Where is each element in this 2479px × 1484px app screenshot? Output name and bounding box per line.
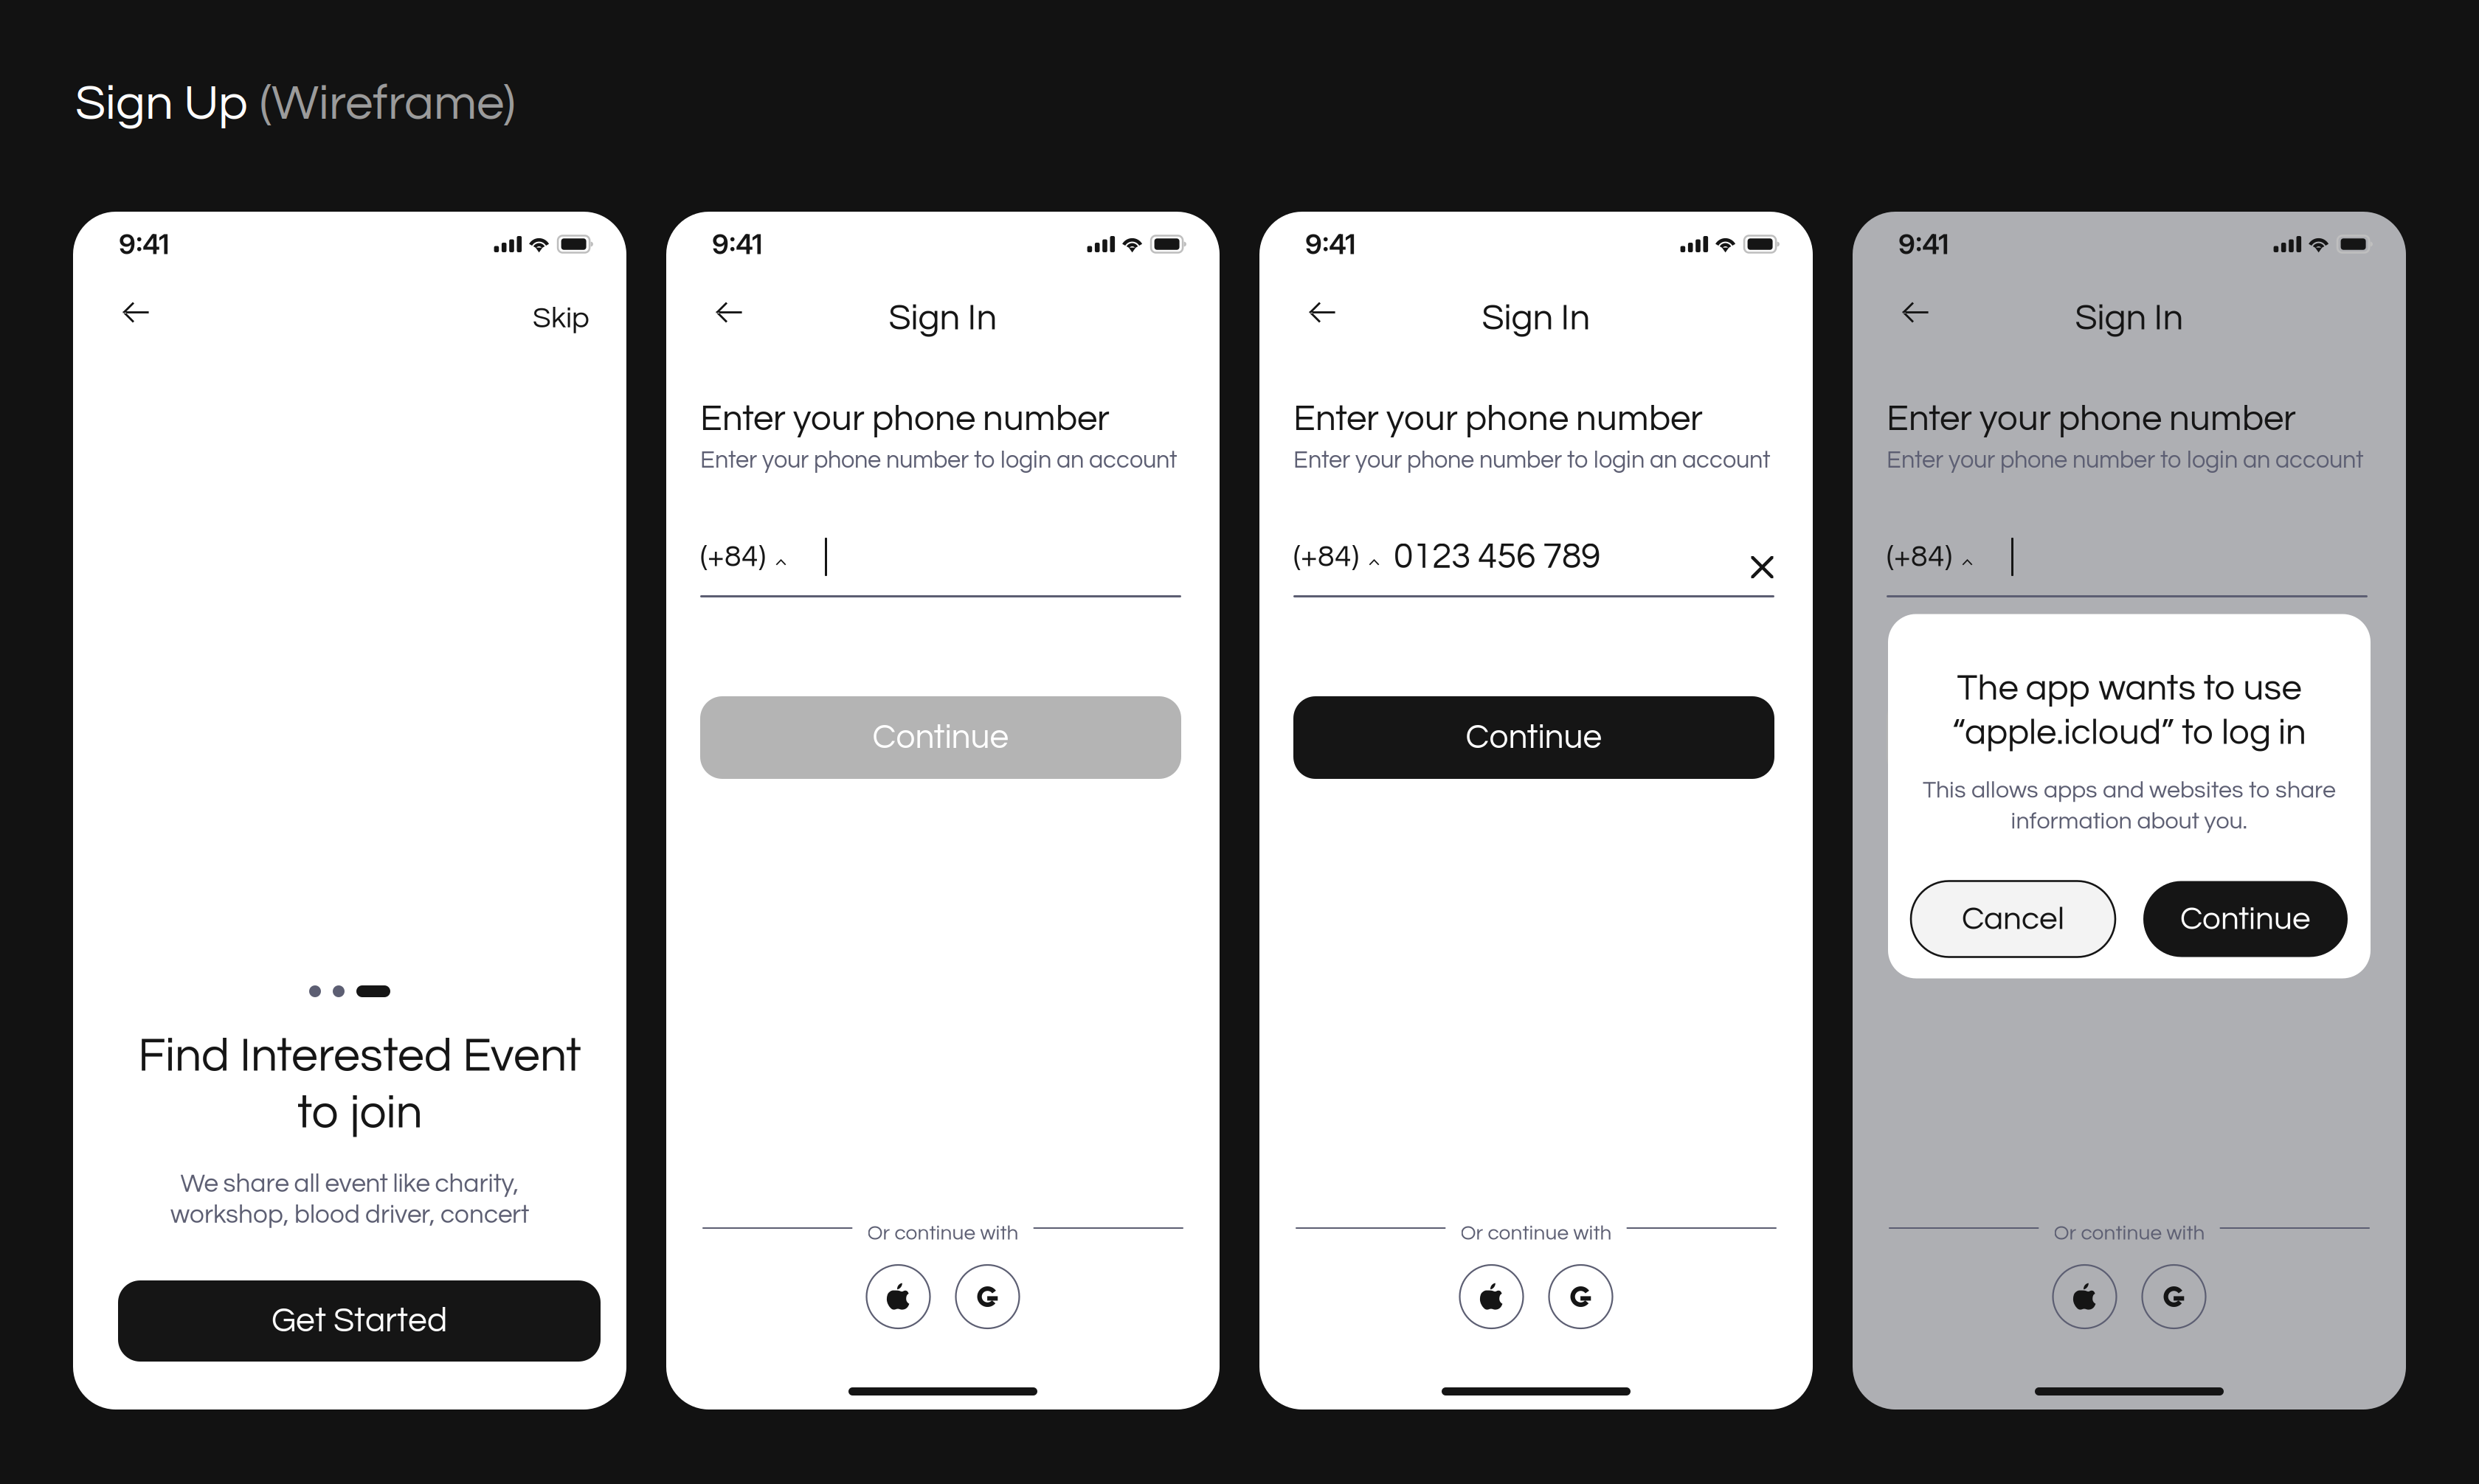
- staticText: Find Interested Event: [138, 1032, 581, 1080]
- staticText: 9:41: [1305, 228, 1355, 261]
- staticText: Sign In: [1482, 300, 1590, 337]
- staticText: Or continue with: [1460, 1223, 1612, 1244]
- staticText: workshop, blood driver, concert: [170, 1202, 529, 1228]
- button[interactable]: Back: [715, 302, 743, 323]
- staticText: Enter your phone number: [1887, 400, 2296, 438]
- staticText: Or continue with: [2054, 1223, 2205, 1244]
- button[interactable]: Continue with Apple: [2053, 1265, 2116, 1328]
- staticText: 9:41: [1898, 228, 1949, 261]
- button[interactable]: Continue with Google: [2142, 1265, 2206, 1328]
- staticText: The app wants to use: [1957, 670, 2302, 707]
- staticText: We share all event like charity,: [180, 1171, 519, 1197]
- staticText: (+84): [700, 541, 766, 572]
- button[interactable]: Continue: [1293, 696, 1774, 779]
- staticText: Continue: [2180, 902, 2311, 936]
- staticText: 9:41: [119, 228, 169, 261]
- staticText: Continue: [2059, 720, 2195, 755]
- staticText: Enter your phone number to login an acco…: [1887, 448, 2364, 473]
- staticText: information about you.: [2011, 809, 2248, 834]
- button[interactable]: Continue with Google: [1549, 1265, 1612, 1328]
- button[interactable]: Continue with Apple: [867, 1265, 930, 1328]
- staticText: (+84): [1293, 541, 1359, 572]
- staticText: 0123 456 789: [1394, 539, 1600, 575]
- staticText: This allows apps and websites to share: [1923, 778, 2336, 803]
- staticText: Sign In: [889, 300, 997, 337]
- staticText: Enter your phone number to login an acco…: [700, 448, 1178, 473]
- staticText: Sign Up: [75, 78, 260, 129]
- staticText: (+84): [1887, 541, 1952, 572]
- button[interactable]: Back: [122, 302, 150, 323]
- button[interactable]: Skip: [533, 298, 626, 338]
- button[interactable]: Get Started: [118, 1280, 601, 1362]
- button[interactable]: Clear: [1750, 555, 1774, 579]
- staticText: Get Started: [272, 1304, 447, 1338]
- staticText: Cancel: [1962, 902, 2064, 936]
- button[interactable]: Cancel: [1911, 881, 2115, 957]
- staticText: Enter your phone number to login an acco…: [1293, 448, 1771, 473]
- button[interactable]: Continue with Google: [956, 1265, 1019, 1328]
- button[interactable]: Continue: [1887, 696, 2368, 779]
- staticText: “apple.icloud” to log in: [1952, 714, 2306, 751]
- staticText: Skip: [533, 303, 590, 333]
- staticText: 9:41: [712, 228, 762, 261]
- staticText: Sign In: [2075, 300, 2184, 337]
- staticText: Enter your phone number: [1293, 400, 1703, 438]
- staticText: Continue: [1466, 720, 1602, 755]
- button[interactable]: Back: [1901, 302, 1929, 323]
- staticText: to join: [297, 1089, 422, 1137]
- staticText: Continue: [872, 720, 1009, 755]
- staticText: Or continue with: [867, 1223, 1019, 1244]
- button[interactable]: Continue with Apple: [1460, 1265, 1523, 1328]
- staticText: Enter your phone number: [700, 400, 1110, 438]
- button[interactable]: Back: [1308, 302, 1336, 323]
- button[interactable]: Continue: [700, 696, 1181, 779]
- button[interactable]: Continue: [2143, 881, 2348, 957]
- staticText: (Wireframe): [260, 78, 515, 129]
